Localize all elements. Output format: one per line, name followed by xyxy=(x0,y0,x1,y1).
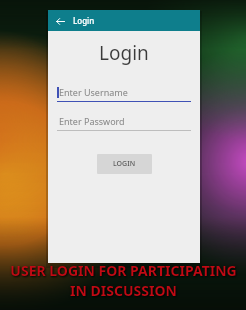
staticText: Enter Username xyxy=(59,86,128,98)
staticText: Login xyxy=(73,15,95,26)
staticText: USER LOGIN FOR PARTICIPATING xyxy=(10,261,237,280)
staticText: LOGIN xyxy=(113,159,136,169)
staticText: IN DISCUSSION xyxy=(70,281,177,300)
button[interactable]: Enter Password xyxy=(57,115,191,131)
button[interactable]: LOGIN xyxy=(97,154,152,174)
button[interactable]: Navigate up xyxy=(53,14,67,28)
button[interactable]: Enter Username xyxy=(57,86,191,102)
staticText: Enter Password xyxy=(59,115,125,127)
staticText: Login xyxy=(99,40,149,66)
